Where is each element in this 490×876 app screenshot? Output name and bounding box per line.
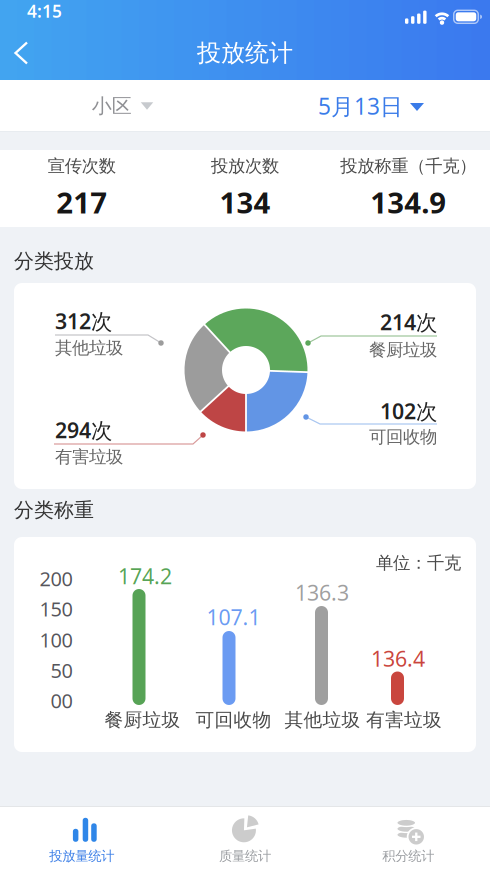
staticText: 积分统计: [382, 848, 434, 864]
button[interactable]: 小区: [0, 80, 245, 132]
button[interactable]: 积分统计: [327, 806, 490, 876]
button[interactable]: Back: [0, 0, 56, 80]
staticText: 投放次数: [211, 155, 279, 177]
staticText: 136.3: [295, 578, 349, 607]
staticText: 00: [50, 687, 72, 714]
staticText: 134: [219, 183, 270, 222]
staticText: 150: [39, 595, 72, 622]
staticText: 5月13日: [318, 91, 403, 121]
staticText: 餐厨垃圾: [369, 339, 437, 361]
staticText: 174.2: [118, 562, 172, 590]
staticText: 50: [50, 657, 72, 683]
staticText: 投放称重（千克）: [340, 155, 476, 177]
staticText: 小区: [92, 94, 132, 118]
button[interactable]: 投放量统计: [0, 806, 163, 876]
staticText: 宣传次数: [48, 155, 116, 177]
staticText: 单位：千克: [376, 552, 461, 574]
staticText: 217: [56, 183, 107, 222]
staticText: 134.9: [370, 183, 446, 222]
staticText: 可回收物: [369, 426, 437, 448]
staticText: 102次: [380, 397, 437, 425]
staticText: 可回收物: [195, 708, 271, 731]
staticText: 有害垃圾: [366, 708, 442, 731]
staticText: 其他垃圾: [55, 337, 123, 359]
button[interactable]: 质量统计: [163, 806, 327, 876]
staticText: 质量统计: [219, 848, 271, 864]
staticText: 分类投放: [14, 249, 94, 273]
staticText: 200: [39, 565, 72, 592]
staticText: 294次: [55, 416, 112, 444]
staticText: 投放统计: [197, 38, 293, 68]
button[interactable]: 5月13日: [245, 80, 490, 132]
staticText: 投放量统计: [49, 848, 114, 864]
staticText: 有害垃圾: [55, 446, 123, 468]
staticText: 分类称重: [14, 498, 94, 522]
staticText: 107.1: [206, 603, 260, 631]
staticText: 312次: [55, 307, 112, 335]
staticText: 4:15: [27, 0, 62, 22]
staticText: 餐厨垃圾: [104, 708, 180, 731]
staticText: 214次: [380, 308, 437, 336]
staticText: 其他垃圾: [284, 708, 360, 731]
staticText: 100: [39, 626, 72, 653]
staticText: 136.4: [371, 644, 425, 672]
